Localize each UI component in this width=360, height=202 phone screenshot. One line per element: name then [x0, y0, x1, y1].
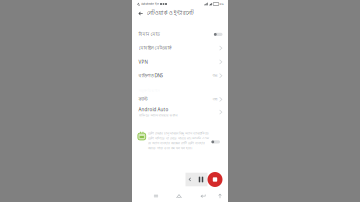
staticText: মোবাইল নেটওয়ার্ক	[139, 45, 172, 51]
button[interactable]: Stop recording	[207, 172, 222, 187]
staticText: বন্ধ	[213, 73, 218, 79]
button[interactable]: Previous	[185, 173, 194, 186]
staticText: বন্ধ	[213, 97, 218, 102]
button[interactable]: বিমান মোড	[132, 27, 228, 41]
staticText: Android Auto	[139, 106, 169, 113]
staticText: নেটওয়ার্ক ও ইন্টারনেট	[147, 10, 194, 17]
button[interactable]: Pause recording	[194, 173, 207, 186]
staticText: বিমান মোড	[139, 31, 160, 38]
staticText: ৫৬	[219, 2, 223, 6]
button[interactable]: Recent apps	[149, 190, 163, 202]
staticText: ক্যাস্ট	[139, 96, 148, 103]
button[interactable]: মোবাইল নেটওয়ার্ক	[132, 41, 228, 55]
staticText: ডেটা সেভার চালু থাকলে কিছু অ্যাপ ব্যাকগ্…	[148, 131, 209, 150]
staticText: ব্যক্তিগত DNS	[139, 72, 163, 79]
staticText: VPN	[139, 59, 148, 65]
button[interactable]: ব্যক্তিগত DNS	[132, 69, 228, 83]
button[interactable]: Home	[172, 190, 186, 202]
button[interactable]: Back	[137, 8, 144, 19]
button[interactable]: Android Auto	[132, 106, 228, 119]
staticText: ভোডাফোন ইন	[141, 2, 159, 6]
button[interactable]: Back	[196, 190, 210, 202]
button[interactable]: Hide keyboard	[213, 190, 227, 202]
staticText: গাড়িতে অ্যাপ ব্যবহার করুন	[139, 113, 178, 118]
button[interactable]: ক্যাস্ট	[132, 93, 228, 106]
button[interactable]: VPN	[132, 55, 228, 69]
